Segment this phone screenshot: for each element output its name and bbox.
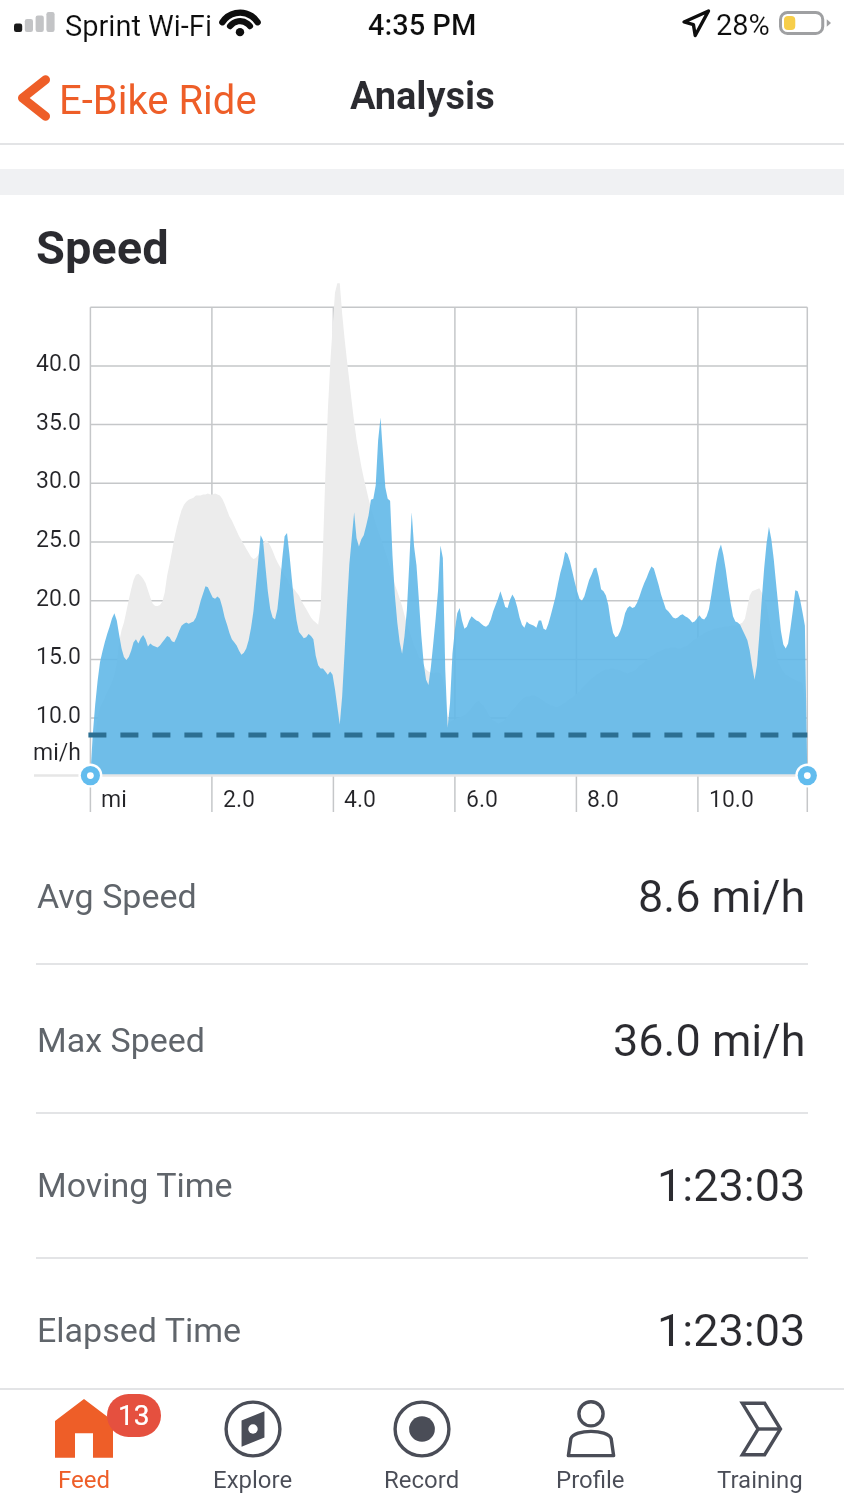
staticText: 10.0 bbox=[709, 786, 754, 813]
staticText: Max Speed bbox=[37, 1020, 205, 1060]
staticText: Elapsed Time bbox=[37, 1310, 242, 1350]
staticText: 1:23:03 bbox=[657, 1304, 806, 1357]
staticText: mi bbox=[101, 786, 127, 813]
staticText: 15.0 bbox=[36, 643, 81, 670]
staticText: E-Bike Ride bbox=[59, 77, 257, 124]
staticText: Explore bbox=[213, 1466, 293, 1494]
staticText: 40.0 bbox=[36, 350, 81, 377]
staticText: 10.0 bbox=[36, 702, 81, 729]
staticText: 4.0 bbox=[344, 786, 376, 813]
staticText: 36.0 mi/h bbox=[613, 1014, 806, 1067]
staticText: 20.0 bbox=[36, 585, 81, 612]
staticText: Avg Speed bbox=[37, 876, 197, 916]
button[interactable]: 13 bbox=[0, 1390, 168, 1500]
staticText: 28% bbox=[716, 8, 770, 42]
staticText: 35.0 bbox=[36, 409, 81, 436]
staticText: Record bbox=[384, 1466, 460, 1494]
button[interactable]: Avg Speed bbox=[0, 824, 844, 968]
staticText: 2.0 bbox=[223, 786, 255, 813]
staticText: Training bbox=[717, 1466, 803, 1494]
staticText: 30.0 bbox=[36, 467, 81, 494]
staticText: Feed bbox=[58, 1466, 111, 1494]
button[interactable]: Max Speed bbox=[0, 968, 844, 1112]
button[interactable]: Training bbox=[675, 1390, 844, 1500]
button[interactable]: Profile bbox=[506, 1390, 675, 1500]
staticText: Sprint Wi-Fi bbox=[65, 9, 212, 43]
other: Profile bbox=[560, 1398, 622, 1460]
staticText: Analysis bbox=[350, 74, 495, 119]
button[interactable]: Moving Time bbox=[0, 1113, 844, 1257]
button[interactable]: Explore bbox=[168, 1390, 337, 1500]
staticText: 1:23:03 bbox=[657, 1159, 806, 1212]
button[interactable]: E-Bike Ride bbox=[10, 54, 271, 141]
other: Explore bbox=[222, 1398, 284, 1460]
staticText: Speed bbox=[36, 220, 169, 275]
staticText: 8.0 bbox=[587, 786, 619, 813]
other: Record bbox=[391, 1398, 453, 1460]
staticText: mi/h bbox=[33, 739, 81, 766]
button[interactable]: Record bbox=[337, 1390, 506, 1500]
staticText: Moving Time bbox=[37, 1165, 233, 1205]
staticText: 4:35 PM bbox=[368, 8, 477, 42]
staticText: 13 bbox=[118, 1399, 150, 1432]
staticText: 25.0 bbox=[36, 526, 81, 553]
staticText: Profile bbox=[556, 1466, 625, 1494]
staticText: 6.0 bbox=[466, 786, 498, 813]
other: Training bbox=[729, 1398, 791, 1460]
button[interactable]: Elapsed Time bbox=[0, 1258, 844, 1402]
staticText: 8.6 mi/h bbox=[638, 870, 806, 923]
